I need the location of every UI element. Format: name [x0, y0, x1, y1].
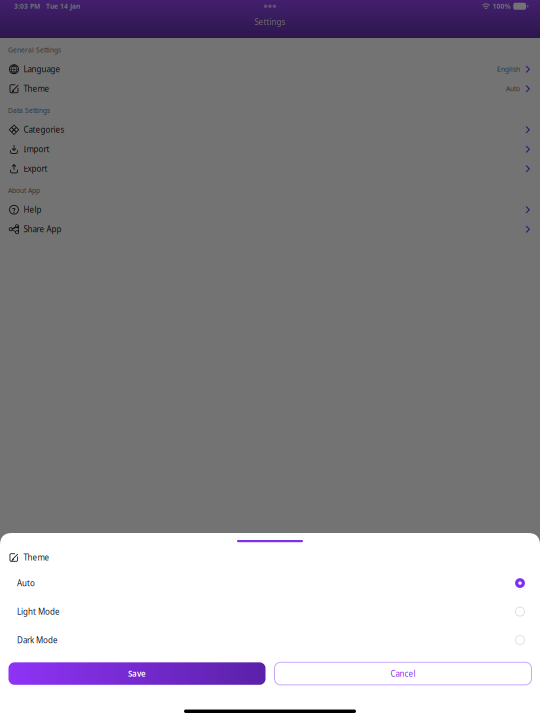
staticText: English — [497, 65, 520, 74]
button[interactable]: Cancel — [274, 662, 531, 685]
button[interactable]: Auto — [0, 569, 540, 597]
staticText: Theme — [23, 83, 49, 94]
staticText: Import — [23, 144, 49, 154]
staticText: 3:03 PM — [14, 2, 40, 11]
button[interactable]: Light Mode — [0, 597, 540, 626]
button[interactable]: Export — [0, 159, 540, 178]
staticText: Light Mode — [17, 606, 60, 617]
staticText: Share App — [23, 224, 61, 234]
staticText: Help — [23, 204, 41, 215]
button[interactable]: Categories — [0, 120, 540, 139]
staticText: Tue 14 Jan — [46, 2, 80, 11]
button[interactable]: Import — [0, 139, 540, 159]
staticText: Categories — [23, 124, 64, 135]
staticText: Export — [23, 163, 47, 174]
staticText: About App — [8, 186, 40, 195]
staticText: 100% — [492, 2, 510, 11]
button[interactable]: Share App — [0, 219, 540, 239]
button[interactable]: Language — [0, 59, 540, 79]
staticText: Dark Mode — [17, 635, 58, 645]
staticText: Language — [23, 64, 60, 74]
staticText: Theme — [23, 552, 49, 563]
staticText: Data Settings — [8, 106, 50, 115]
staticText: Auto — [506, 84, 520, 93]
staticText: Settings — [254, 16, 285, 27]
button[interactable]: Dark Mode — [0, 626, 540, 654]
staticText: Auto — [17, 578, 35, 588]
button[interactable]: Save — [8, 662, 265, 685]
button[interactable]: Help — [0, 200, 540, 219]
button[interactable]: Theme — [0, 79, 540, 98]
staticText: Cancel — [390, 668, 415, 679]
staticText: Save — [128, 668, 146, 679]
staticText: General Settings — [8, 46, 61, 54]
